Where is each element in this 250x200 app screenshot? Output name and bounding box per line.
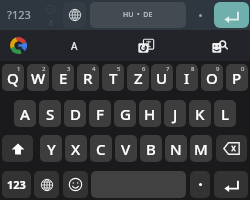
button[interactable]: J: [164, 100, 186, 127]
button[interactable]: HU • DE: [90, 2, 186, 28]
staticText: E: [59, 68, 68, 88]
button[interactable]: M: [190, 135, 212, 162]
button[interactable]: Emoji: [63, 171, 88, 198]
button[interactable]: B: [140, 135, 162, 162]
staticText: 9: [216, 65, 220, 73]
button[interactable]: L: [214, 100, 236, 127]
button[interactable]: C: [90, 135, 112, 162]
button[interactable]: U: [151, 64, 173, 91]
staticText: L: [221, 104, 230, 124]
staticText: X: [71, 139, 81, 159]
staticText: S: [46, 104, 55, 124]
staticText: W: [31, 68, 46, 88]
staticText: 5: [117, 65, 121, 73]
button[interactable]: H: [139, 100, 161, 127]
button[interactable]: [190, 2, 211, 28]
button[interactable]: X: [65, 135, 87, 162]
staticText: 123: [7, 177, 26, 192]
staticText: U: [156, 68, 168, 88]
staticText: J: [173, 104, 178, 124]
button[interactable]: I: [176, 64, 198, 91]
button[interactable]: Y: [40, 135, 62, 162]
staticText: G: [120, 104, 131, 124]
button[interactable]: Stickers: [207, 35, 232, 56]
staticText: A: [71, 39, 78, 53]
button[interactable]: Q: [2, 64, 24, 91]
button[interactable]: [190, 171, 210, 198]
staticText: B: [146, 139, 156, 159]
staticText: 7: [166, 65, 170, 73]
staticText: Q: [7, 68, 19, 88]
button[interactable]: G: [114, 100, 136, 127]
button[interactable]: Change language: [34, 171, 59, 198]
button[interactable]: F: [89, 100, 111, 127]
staticText: O: [206, 68, 218, 88]
button[interactable]: K: [189, 100, 211, 127]
button[interactable]: S: [39, 100, 61, 127]
button[interactable]: V: [115, 135, 137, 162]
staticText: 2: [42, 65, 46, 73]
staticText: C: [96, 139, 106, 159]
button[interactable]: Backspace: [216, 135, 247, 162]
staticText: V: [121, 139, 131, 159]
staticText: H: [144, 104, 156, 124]
button[interactable]: Space: [91, 171, 186, 198]
staticText: R: [83, 68, 93, 88]
button[interactable]: Translate: [133, 35, 158, 56]
staticText: K: [195, 104, 205, 124]
button[interactable]: Google: [8, 35, 29, 56]
staticText: M: [194, 139, 208, 159]
button[interactable]: Z: [127, 64, 149, 91]
staticText: D: [70, 104, 81, 124]
staticText: F: [96, 104, 104, 124]
staticText: P: [232, 68, 242, 88]
button[interactable]: N: [165, 135, 187, 162]
button[interactable]: Change language: [63, 2, 86, 28]
staticText: I: [184, 68, 190, 88]
button[interactable]: E: [52, 64, 74, 91]
button[interactable]: ?123: [3, 1, 35, 27]
button[interactable]: 123: [2, 171, 31, 198]
staticText: 0: [241, 65, 245, 73]
button[interactable]: T: [102, 64, 124, 91]
button[interactable]: Text editing: [60, 35, 88, 56]
button[interactable]: P: [226, 64, 248, 91]
button[interactable]: Enter: [214, 2, 249, 28]
staticText: N: [170, 139, 182, 159]
button[interactable]: Shift: [2, 135, 33, 162]
staticText: Z: [134, 68, 143, 88]
staticText: 8: [191, 65, 195, 73]
button[interactable]: O: [201, 64, 223, 91]
staticText: 6: [142, 65, 146, 73]
staticText: HU • DE: [123, 10, 153, 20]
staticText: A: [20, 104, 30, 124]
staticText: 3: [67, 65, 71, 73]
button[interactable]: D: [64, 100, 86, 127]
button[interactable]: W: [27, 64, 49, 91]
staticText: T: [109, 68, 118, 88]
button[interactable]: R: [77, 64, 99, 91]
staticText: 4: [92, 65, 96, 73]
staticText: Y: [47, 139, 56, 159]
staticText: ?123: [7, 7, 31, 22]
staticText: 1: [17, 65, 21, 73]
button[interactable]: Enter: [214, 171, 248, 198]
button[interactable]: A: [14, 100, 36, 127]
